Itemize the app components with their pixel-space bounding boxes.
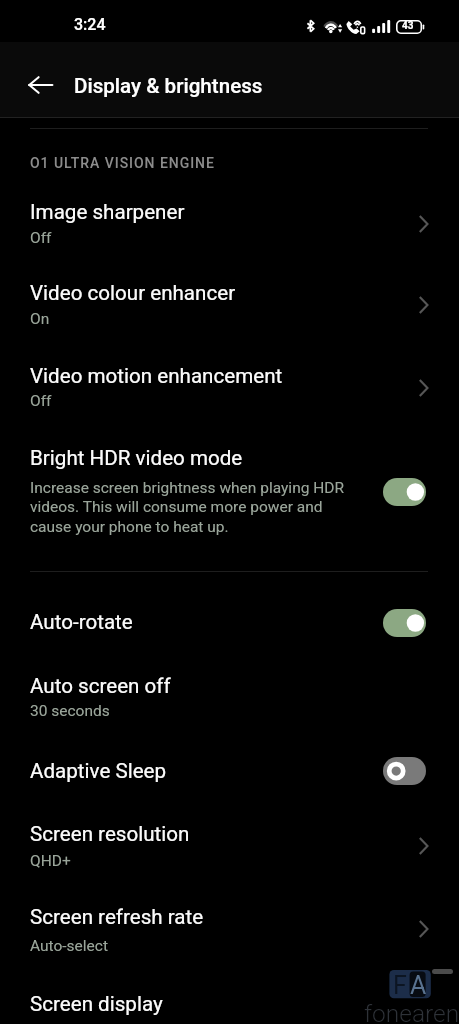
staticText: Display & brightness <box>74 74 263 98</box>
staticText: QHD+ <box>30 852 71 870</box>
staticText: Video motion enhancement <box>30 364 283 388</box>
button[interactable]: Auto screen off <box>0 658 459 743</box>
staticText: Increase screen brightness when playing … <box>30 479 345 497</box>
staticText: Auto-select <box>30 937 109 955</box>
staticText: Image sharpener <box>30 200 185 224</box>
button[interactable]: Auto-rotate switch, on <box>383 609 426 637</box>
staticText: Video colour enhancer <box>30 281 236 305</box>
button[interactable]: Auto-rotate <box>0 595 459 658</box>
button[interactable]: Video motion enhancement <box>0 347 459 429</box>
staticText: Screen display <box>30 992 163 1016</box>
staticText: O1 ULTRA VISION ENGINE <box>30 155 215 171</box>
staticText: Screen refresh rate <box>30 905 204 929</box>
button[interactable]: Adaptive Sleep <box>0 743 459 806</box>
staticText: Auto-rotate <box>30 610 133 634</box>
button[interactable]: Screen resolution <box>0 806 459 889</box>
staticText: videos. This will consume more power and <box>30 498 323 516</box>
staticText: F <box>393 971 407 1000</box>
staticText: A <box>410 971 427 1000</box>
staticText: fonearena <box>364 999 459 1024</box>
button[interactable]: Bright HDR video mode switch, on <box>383 478 426 506</box>
staticText: On <box>30 310 50 328</box>
staticText: Bright HDR video mode <box>30 446 243 470</box>
staticText: Auto screen off <box>30 674 171 698</box>
button[interactable]: Screen display <box>0 976 459 1024</box>
button[interactable]: Bright HDR video mode <box>0 429 459 549</box>
staticText: cause your phone to heat up. <box>30 518 229 536</box>
button[interactable]: Video colour enhancer <box>0 264 459 346</box>
staticText: 3:24 <box>74 15 106 34</box>
button[interactable]: Adaptive Sleep switch, off <box>383 757 426 785</box>
staticText: 43 <box>402 20 414 32</box>
staticText: Off <box>30 392 52 410</box>
staticText: 30 seconds <box>30 702 110 720</box>
button[interactable]: Back <box>22 66 60 104</box>
staticText: Adaptive Sleep <box>30 759 167 783</box>
staticText: Screen resolution <box>30 822 190 846</box>
button[interactable]: Image sharpener <box>0 182 459 264</box>
staticText: Off <box>30 229 52 247</box>
button[interactable]: Screen refresh rate <box>0 889 459 976</box>
